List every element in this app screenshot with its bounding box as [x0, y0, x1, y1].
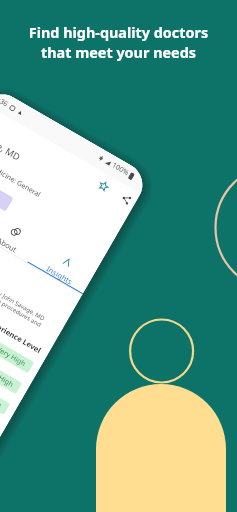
staticText: 100% — [110, 160, 131, 178]
staticText: Very High — [0, 386, 3, 411]
button[interactable]: Share — [119, 192, 133, 206]
staticText: Find high-quality doctors that meet your… — [0, 23, 237, 62]
button[interactable]: Save doctor — [97, 179, 110, 193]
staticText: Internal Medicine: General — [0, 147, 43, 200]
button[interactable]: Insights — [31, 243, 95, 294]
staticText: Very High — [0, 344, 27, 369]
staticText: High — [0, 373, 15, 390]
staticText: Insights — [45, 264, 75, 287]
staticText: New patients — [0, 173, 3, 204]
staticText: About — [0, 235, 19, 255]
button[interactable]: Shoulder surgery — [0, 324, 4, 411]
staticText: Savage, MD — [0, 127, 23, 163]
button[interactable]: Hip replacement — [0, 303, 16, 391]
button[interactable]: New patients — [0, 165, 14, 212]
button[interactable]: Knee replacement — [0, 283, 28, 370]
staticText: 2:36 — [0, 94, 10, 109]
staticText: Experience Level — [0, 315, 43, 355]
button[interactable]: About — [0, 213, 43, 264]
staticText: Review the procedures performed by John … — [0, 239, 47, 335]
